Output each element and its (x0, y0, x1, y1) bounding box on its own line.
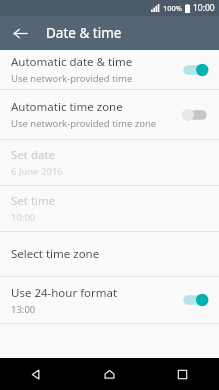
staticText: Use network-provided time zone (11, 117, 157, 130)
button[interactable]: Set time (0, 186, 219, 231)
staticText: Date & time (46, 24, 122, 42)
staticText: Select time zone (11, 246, 100, 262)
staticText: 10:00 (11, 211, 36, 224)
button[interactable]: Navigate up (7, 20, 33, 46)
button[interactable]: Select time zone (0, 232, 219, 276)
button[interactable]: Toggle on (180, 60, 210, 80)
staticText: Automatic time zone (11, 99, 123, 115)
staticText: 100% (163, 3, 183, 13)
staticText: Use 24-hour format (11, 285, 118, 301)
button[interactable]: Automatic time zone (0, 90, 219, 139)
button[interactable]: Use 24-hour format (0, 277, 219, 323)
button[interactable]: Toggle on (180, 290, 210, 310)
button[interactable]: Home (73, 358, 146, 390)
button[interactable]: Recent apps (146, 358, 219, 390)
staticText: 6 June 2016 (11, 165, 63, 178)
button[interactable]: Automatic date & time (0, 50, 219, 89)
staticText: Set date (11, 147, 56, 163)
button[interactable]: Back (0, 358, 73, 390)
staticText: Use network-provided time (11, 72, 133, 85)
button[interactable]: Toggle off (180, 105, 210, 125)
staticText: Set time (11, 193, 56, 209)
button[interactable]: Set date (0, 140, 219, 185)
staticText: 13:00 (11, 303, 36, 316)
staticText: 10:00 (193, 2, 215, 14)
staticText: Automatic date & time (11, 54, 133, 70)
